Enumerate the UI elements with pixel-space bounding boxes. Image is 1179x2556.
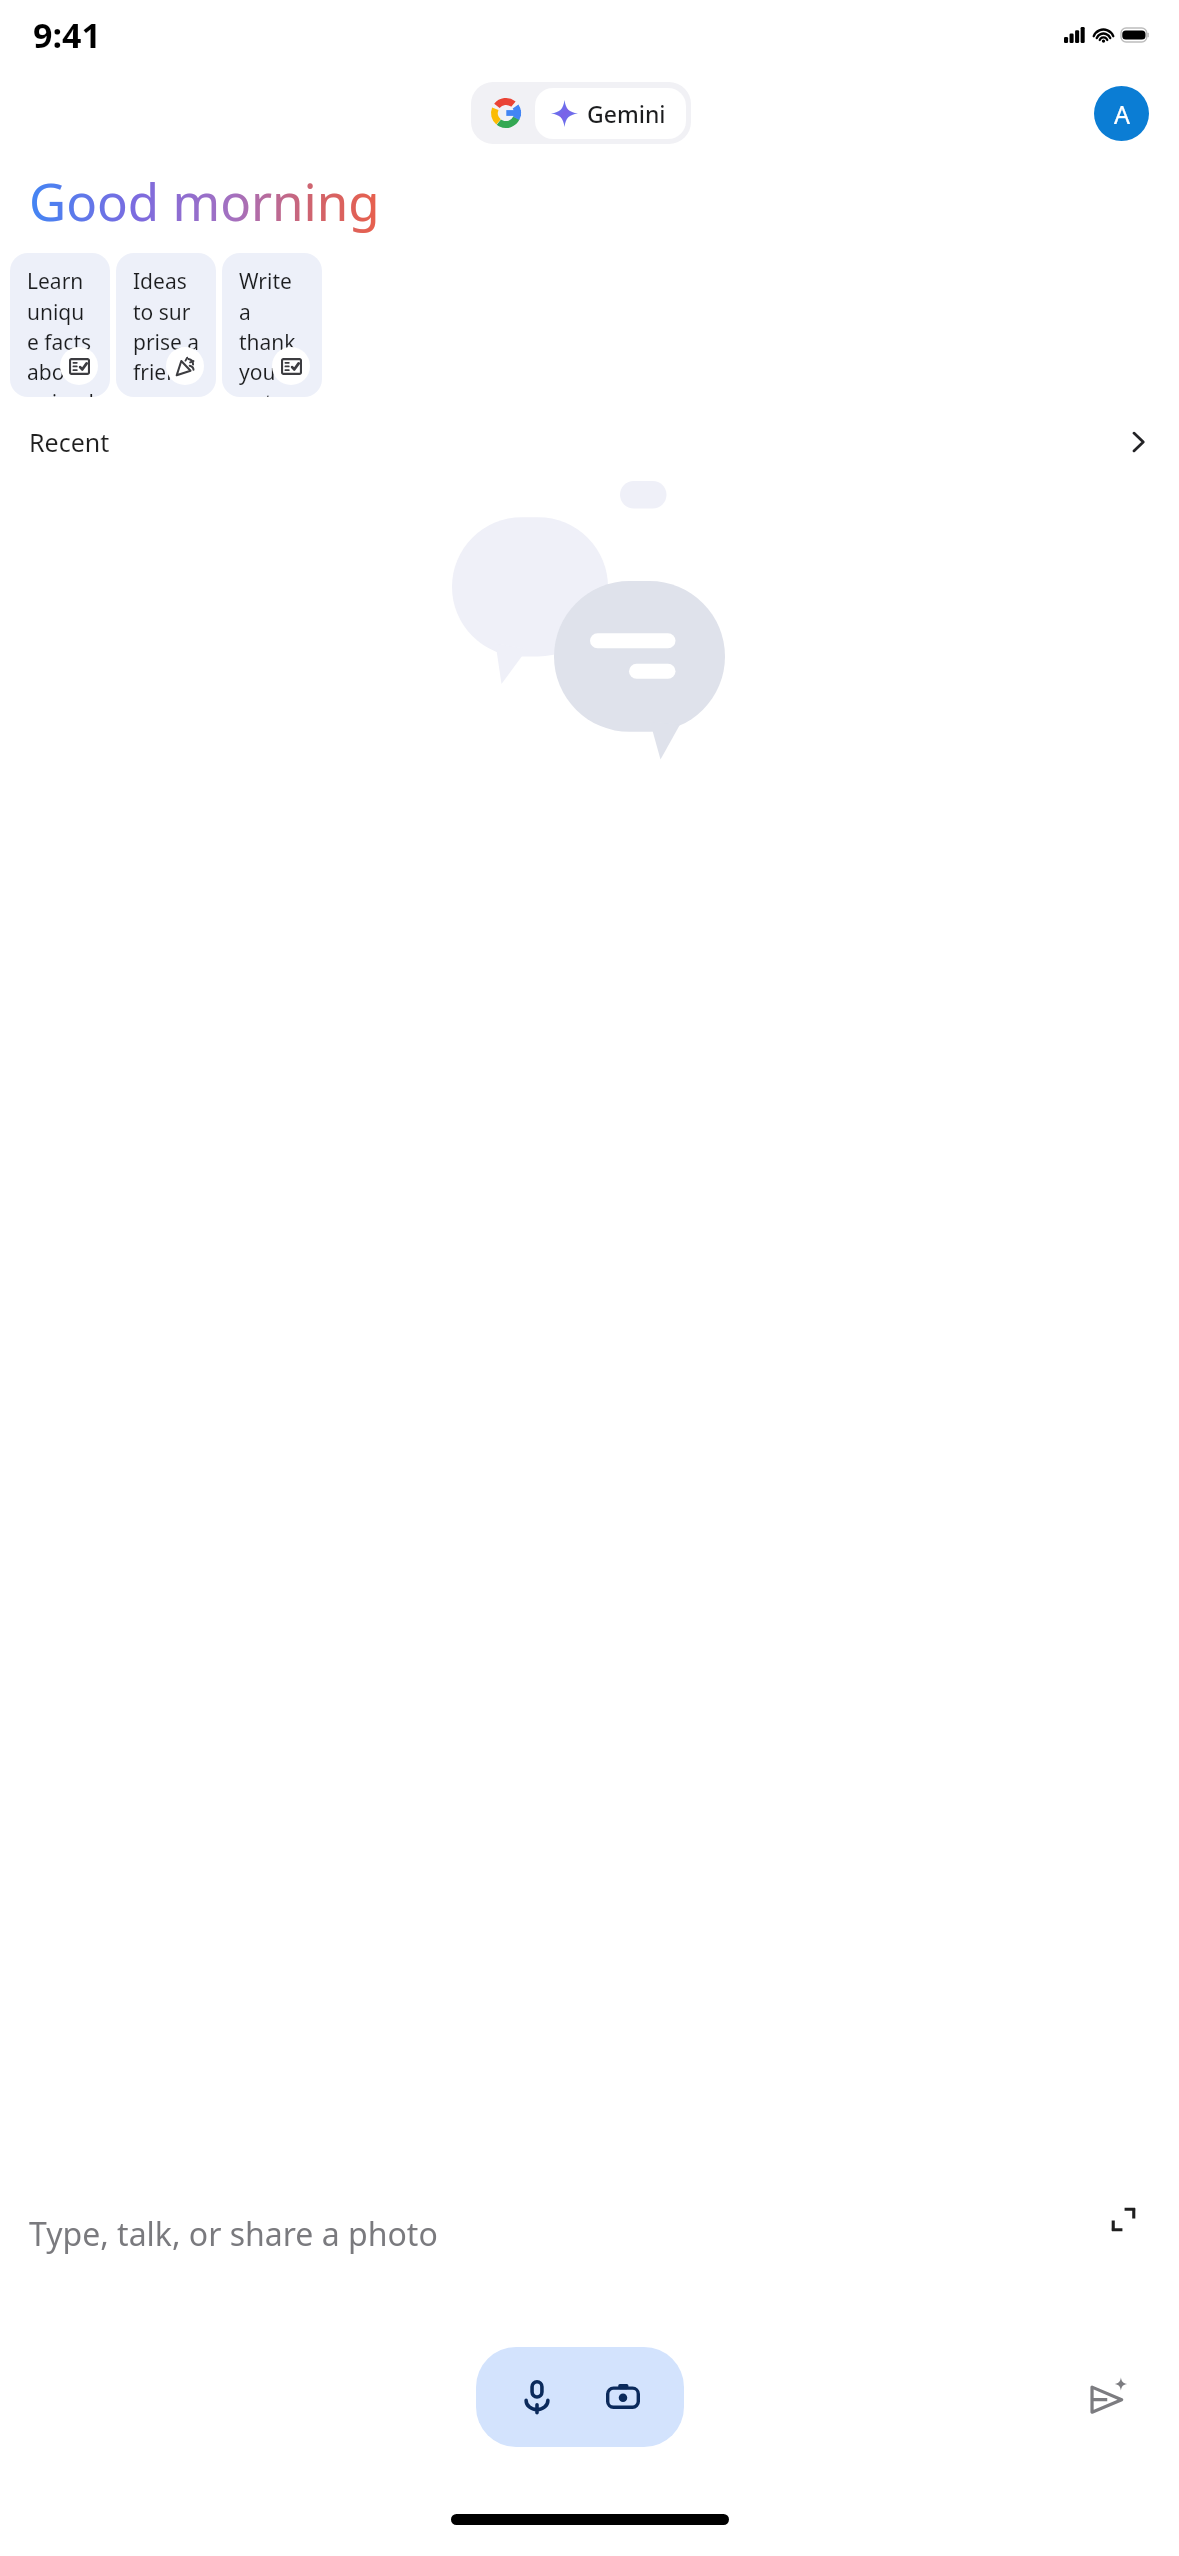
button[interactable]: Account (1094, 86, 1149, 141)
button[interactable]: Camera (580, 2347, 666, 2447)
staticText: Gemini (587, 98, 666, 129)
button[interactable]: Write a thank you note (222, 253, 322, 397)
staticText: Ideas to surprise a friend on their birt… (133, 267, 202, 397)
staticText: 9:41 (33, 12, 101, 58)
staticText: Recent (29, 425, 110, 459)
button[interactable]: Recent (0, 413, 1179, 471)
button[interactable]: Learn unique facts about animals (10, 253, 110, 397)
button[interactable]: Google Search (480, 87, 532, 139)
button[interactable]: Voice input (494, 2347, 580, 2447)
staticText: Type, talk, or share a photo (29, 2212, 438, 2256)
button[interactable]: Gemini (535, 88, 686, 139)
staticText: Write a thank you note (239, 267, 308, 397)
button[interactable]: Send (1075, 2364, 1141, 2430)
button[interactable]: Google Search (471, 82, 691, 144)
button[interactable]: Type, talk, or share a photo (0, 2145, 1179, 2317)
staticText: A (1114, 97, 1130, 131)
staticText: Learn unique facts about animals (27, 267, 96, 397)
button[interactable]: Expand input (1103, 2199, 1143, 2239)
staticText: Good morning (29, 166, 380, 235)
button[interactable]: Ideas to surprise a friend on their birt… (116, 253, 216, 397)
